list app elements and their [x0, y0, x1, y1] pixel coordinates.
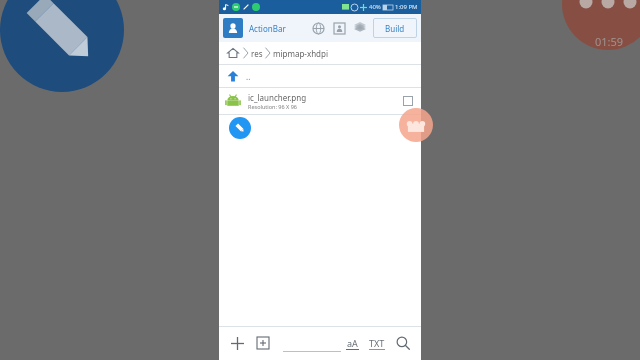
- button[interactable]: New file: [227, 333, 247, 353]
- staticText: 1:09 PM: [395, 3, 418, 11]
- staticText: TXT: [369, 337, 385, 349]
- button[interactable]: Home: [225, 45, 241, 61]
- staticText: Resolution: 96 X 96: [248, 103, 298, 110]
- button[interactable]: Account: [330, 19, 348, 37]
- staticText: 01:59: [595, 34, 624, 49]
- button[interactable]: File name: [283, 334, 341, 352]
- staticText: aA: [347, 337, 358, 349]
- staticText: ..: [246, 71, 251, 82]
- staticText: 40%: [369, 3, 381, 11]
- button[interactable]: ic_launcher.png: [219, 88, 421, 114]
- button[interactable]: Select file: [403, 96, 413, 106]
- button[interactable]: TXT: [367, 337, 387, 350]
- button[interactable]: Build: [373, 18, 417, 38]
- staticText: ActionBar: [249, 23, 286, 34]
- staticText: Build: [385, 23, 405, 34]
- button[interactable]: Edit: [229, 117, 251, 139]
- button[interactable]: Preview: [309, 19, 327, 37]
- button[interactable]: App icon: [223, 18, 243, 38]
- button[interactable]: Search: [393, 333, 413, 353]
- button[interactable]: mipmap-xhdpi: [273, 48, 329, 59]
- button[interactable]: aA: [344, 337, 361, 350]
- button[interactable]: New folder: [253, 333, 273, 353]
- button[interactable]: ..: [219, 65, 421, 87]
- staticText: ic_launcher.png: [248, 92, 307, 103]
- button[interactable]: res: [251, 48, 263, 59]
- button[interactable]: Layers: [351, 19, 369, 37]
